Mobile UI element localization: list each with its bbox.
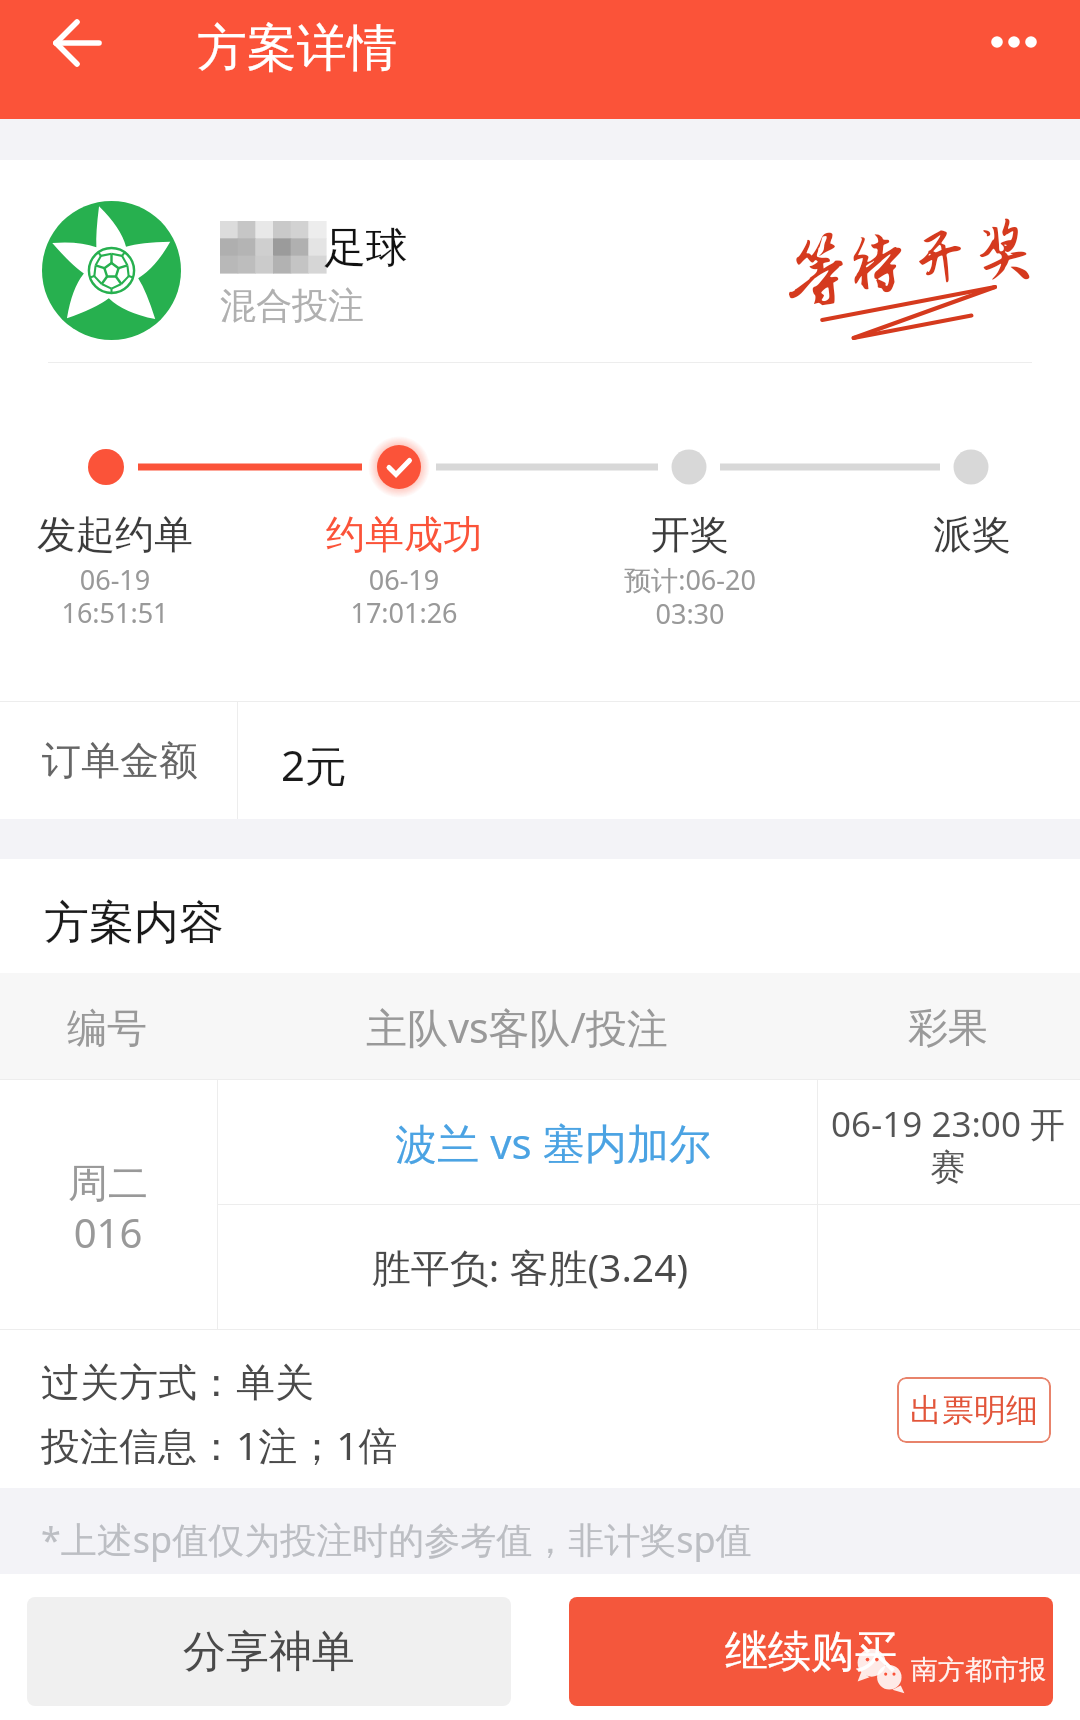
staticText: 彩果 [748, 1002, 1080, 1052]
staticText: 混合投注 [220, 283, 364, 328]
staticText: 主队vs客队/投注 [317, 999, 717, 1055]
staticText: 胜平负: 客胜(3.24) [330, 1240, 730, 1293]
staticText: 分享神单 [183, 1625, 355, 1679]
button[interactable]: Back [16, 3, 102, 89]
staticText: 06-19 16:51:51 [0, 561, 315, 631]
staticText: 波兰 vs 塞内加尔 [353, 1114, 753, 1171]
button[interactable]: 足球 混合投注 方案 [0, 160, 1080, 362]
staticText: 方案详情 [197, 17, 397, 80]
staticText: 周二 016 [0, 1158, 308, 1260]
staticText: 约单成功 [204, 510, 604, 559]
staticText: 编号 [0, 1003, 307, 1053]
button[interactable]: 继续购买 [569, 1597, 1053, 1706]
staticText: 派奖 [772, 510, 1080, 559]
staticText: 继续购买 [725, 1625, 897, 1679]
staticText: 方案内容 [44, 895, 224, 952]
staticText: 出票明细 [910, 1390, 1038, 1430]
staticText: 预计:06-20 03:30 [490, 561, 890, 632]
staticText: 南方都市报 [911, 1653, 1046, 1687]
staticText: 发起约单 [0, 510, 315, 559]
staticText: 订单金额 [42, 736, 198, 785]
staticText: 06-19 23:00 开 赛 [823, 1100, 1073, 1189]
staticText: 投注信息：1注；1倍 [41, 1418, 398, 1471]
button[interactable]: 出票明细 [897, 1377, 1051, 1443]
button[interactable]: More options [950, 0, 1080, 86]
button[interactable]: 分享神单 [27, 1597, 511, 1706]
staticText: 开奖 [490, 510, 890, 559]
staticText: 06-19 17:01:26 [204, 561, 604, 631]
staticText: 过关方式：单关 [41, 1358, 314, 1407]
staticText: 足球 [324, 222, 408, 275]
staticText: *上述sp值仅为投注时的参考值，非计奖sp值 [41, 1515, 752, 1564]
staticText: 2元 [281, 736, 348, 793]
staticText: 等待开奖 [780, 213, 1038, 309]
